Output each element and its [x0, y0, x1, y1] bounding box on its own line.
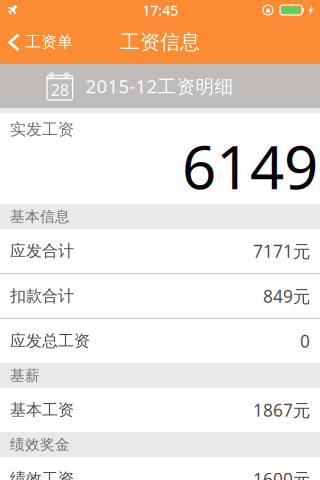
- staticText: 基本信息: [10, 207, 70, 225]
- button[interactable]: 应发总工资: [0, 319, 320, 363]
- staticText: 17:45: [142, 0, 178, 20]
- staticText: 基本工资: [10, 400, 74, 420]
- button[interactable]: 绩效工资: [0, 457, 320, 480]
- staticText: 实发工资: [10, 120, 74, 139]
- staticText: 绩效奖金: [10, 435, 70, 453]
- staticText: 0: [300, 329, 310, 352]
- staticText: 1600元: [253, 467, 310, 480]
- staticText: 应发合计: [10, 241, 74, 261]
- button[interactable]: 扣款合计: [0, 274, 320, 318]
- staticText: 绩效工资: [10, 469, 74, 480]
- staticText: 工资信息: [120, 30, 200, 54]
- staticText: 扣款合计: [10, 286, 74, 306]
- staticText: 基薪: [10, 366, 40, 384]
- staticText: 应发总工资: [10, 331, 90, 351]
- staticText: 6149: [182, 126, 318, 206]
- staticText: 工资单: [25, 32, 73, 52]
- staticText: 849元: [263, 284, 310, 307]
- staticText: 1867元: [253, 398, 310, 421]
- button[interactable]: 工资单: [0, 20, 79, 64]
- staticText: 2015-12工资明细: [86, 74, 234, 98]
- button[interactable]: 基本工资: [0, 388, 320, 432]
- staticText: 7171元: [253, 239, 310, 262]
- button[interactable]: 应发合计: [0, 229, 320, 273]
- staticText: 28: [51, 79, 69, 100]
